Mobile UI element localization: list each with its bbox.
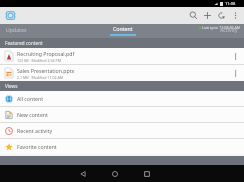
- staticText: Favorite content: [17, 143, 57, 150]
- button[interactable]: Favorite content: [0, 139, 244, 154]
- button[interactable]: App logo: [5, 10, 16, 21]
- staticText: Sales Presentation.pptx: [17, 67, 75, 74]
- staticText: Last sync: 11:08:26 AM: [202, 25, 240, 30]
- staticText: 11:08: [225, 1, 236, 6]
- button[interactable]: Back: [76, 167, 90, 181]
- button[interactable]: Content: [82, 24, 163, 38]
- staticText: Recruiting Proposal.pdf: [17, 50, 75, 57]
- staticText: Activity: [220, 26, 238, 33]
- staticText: 2.1 MB · Modified 11:02 AM: [17, 75, 64, 80]
- staticText: Recent activity: [17, 127, 53, 134]
- staticText: Updates: [6, 26, 27, 33]
- staticText: Views: [5, 83, 18, 89]
- button[interactable]: Sales Presentation.pptx: [0, 65, 244, 81]
- button[interactable]: All content: [0, 91, 244, 106]
- button[interactable]: Recent activity: [0, 123, 244, 138]
- button[interactable]: Item menu: [232, 50, 239, 62]
- staticText: Content: [113, 25, 133, 32]
- staticText: 123 KB · Modified 2:34 PM: [17, 58, 61, 63]
- button[interactable]: Item menu: [232, 67, 239, 79]
- button[interactable]: Activity: [163, 24, 244, 38]
- button[interactable]: Home: [108, 167, 122, 181]
- staticText: New content: [17, 111, 48, 118]
- button[interactable]: More options: [231, 11, 240, 20]
- button[interactable]: New content: [0, 107, 244, 122]
- button[interactable]: Add: [203, 11, 212, 20]
- staticText: All content: [17, 95, 44, 102]
- staticText: Featured content: [5, 40, 43, 46]
- button[interactable]: Sync: [217, 11, 226, 20]
- button[interactable]: Updates: [0, 24, 82, 38]
- button[interactable]: Recruiting Proposal.pdf: [0, 48, 244, 64]
- button[interactable]: Search: [189, 11, 198, 20]
- button[interactable]: Recent apps: [140, 167, 154, 181]
